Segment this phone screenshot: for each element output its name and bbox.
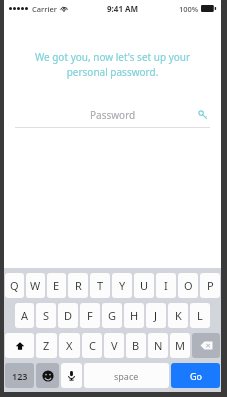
staticText: P	[207, 278, 214, 293]
staticText: A	[21, 308, 29, 323]
staticText: S	[43, 308, 50, 323]
staticText: 123	[12, 370, 28, 382]
staticText: V	[111, 338, 118, 353]
button[interactable]: Password	[15, 105, 210, 128]
staticText: M	[175, 338, 185, 353]
button[interactable]: I	[156, 273, 176, 298]
staticText: We got you, now let's set up your person…	[20, 50, 205, 79]
staticText: G	[108, 308, 117, 323]
button[interactable]: Q	[5, 273, 24, 298]
staticText: Password	[90, 108, 136, 122]
staticText: Z	[43, 338, 50, 353]
button[interactable]: Voice input	[61, 363, 82, 388]
button[interactable]: Y	[112, 273, 132, 298]
staticText: R	[75, 278, 82, 293]
staticText: Carrier	[32, 4, 57, 14]
staticText: K	[175, 308, 182, 323]
staticText: L	[197, 308, 203, 323]
staticText: H	[130, 308, 139, 323]
staticText: D	[64, 308, 73, 323]
button[interactable]: J	[146, 303, 166, 328]
button[interactable]: R	[68, 273, 88, 298]
staticText: 9:41 AM	[107, 3, 139, 14]
staticText: E	[53, 278, 60, 293]
button[interactable]: Shift	[5, 333, 34, 358]
button[interactable]: B	[126, 333, 146, 358]
button[interactable]: Go	[171, 363, 220, 388]
staticText: 100%	[179, 4, 199, 14]
staticText: I	[164, 278, 168, 293]
button[interactable]: D	[58, 303, 78, 328]
staticText: Y	[119, 278, 126, 293]
button[interactable]: F	[80, 303, 100, 328]
button[interactable]: A	[15, 303, 34, 328]
button[interactable]: Emoji	[36, 363, 59, 388]
staticText: X	[66, 338, 73, 353]
button[interactable]: Show password	[196, 108, 210, 122]
button[interactable]: V	[104, 333, 124, 358]
button[interactable]: Delete	[192, 333, 220, 358]
staticText: W	[30, 278, 41, 293]
button[interactable]: K	[168, 303, 188, 328]
staticText: N	[154, 338, 163, 353]
staticText: O	[184, 278, 193, 293]
button[interactable]: X	[59, 333, 80, 358]
button[interactable]: M	[170, 333, 190, 358]
staticText: T	[97, 278, 104, 293]
button[interactable]: U	[134, 273, 154, 298]
button[interactable]: L	[190, 303, 210, 328]
button[interactable]: C	[82, 333, 102, 358]
button[interactable]: S	[36, 303, 56, 328]
staticText: B	[132, 338, 140, 353]
button[interactable]: Z	[36, 333, 57, 358]
button[interactable]: E	[47, 273, 66, 298]
staticText: C	[89, 338, 96, 353]
button[interactable]: 123	[5, 363, 34, 388]
button[interactable]: G	[102, 303, 122, 328]
button[interactable]: W	[26, 273, 45, 298]
button[interactable]: P	[200, 273, 220, 298]
button[interactable]: H	[124, 303, 144, 328]
button[interactable]: space	[84, 363, 169, 388]
staticText: U	[140, 278, 149, 293]
button[interactable]: N	[148, 333, 168, 358]
staticText: J	[154, 308, 158, 323]
staticText: space	[114, 370, 139, 382]
staticText: F	[87, 308, 93, 323]
staticText: Go	[190, 370, 202, 382]
button[interactable]: O	[178, 273, 198, 298]
staticText: Q	[10, 278, 19, 293]
button[interactable]: T	[90, 273, 110, 298]
